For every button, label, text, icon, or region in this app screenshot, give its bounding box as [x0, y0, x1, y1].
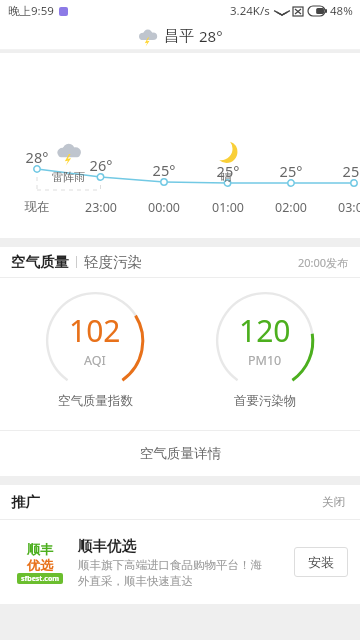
staticText: 00:00: [138, 199, 190, 216]
staticText: 25°: [208, 161, 248, 181]
staticText: 推广: [11, 493, 40, 511]
staticText: 23:00: [75, 199, 127, 216]
staticText: 顺丰优选: [78, 537, 136, 555]
other: 顺丰优选 logo: [12, 538, 68, 586]
staticText: 03:00: [328, 199, 360, 216]
staticText: 昌平: [164, 27, 194, 46]
staticText: 晴: [221, 170, 232, 184]
staticText: 空气质量: [11, 253, 69, 271]
staticText: 晚上9:59: [8, 3, 54, 19]
staticText: 25°: [271, 161, 311, 181]
staticText: 轻度污染: [84, 253, 142, 271]
button[interactable]: 关闭: [318, 491, 349, 513]
staticText: 25°: [334, 161, 360, 181]
staticText: 102: [69, 310, 121, 351]
staticText: 20:00发布: [298, 255, 349, 270]
staticText: 顺丰: [27, 541, 53, 557]
staticText: 26°: [81, 155, 121, 175]
staticText: 3.24K/s: [230, 3, 270, 19]
staticText: 优选: [27, 557, 53, 573]
staticText: 28°: [17, 147, 57, 167]
button[interactable]: 102: [20, 278, 170, 409]
staticText: 首要污染物: [234, 393, 297, 409]
staticText: 28°: [199, 26, 223, 46]
button[interactable]: 安装: [294, 547, 348, 577]
staticText: 01:00: [202, 199, 254, 216]
staticText: 02:00: [265, 199, 317, 216]
staticText: 120: [239, 310, 291, 351]
staticText: AQI: [84, 352, 106, 369]
staticText: 现在: [11, 199, 63, 215]
staticText: 48%: [330, 3, 353, 19]
button[interactable]: 120: [190, 278, 340, 409]
staticText: sfbest.com: [21, 574, 60, 584]
staticText: 25°: [144, 160, 184, 180]
staticText: 空气质量详情: [140, 445, 221, 462]
staticText: 空气质量指数: [58, 393, 133, 409]
staticText: PM10: [248, 352, 282, 369]
button[interactable]: 顺丰优选 logo: [12, 520, 348, 604]
staticText: 顺丰旗下高端进口食品购物平台！海: [78, 558, 262, 572]
button[interactable]: 空气质量详情: [0, 431, 360, 476]
staticText: 雷阵雨: [52, 170, 85, 184]
staticText: 外直采，顺丰快速直达: [78, 574, 193, 588]
staticText: 关闭: [322, 495, 345, 509]
staticText: 安装: [308, 554, 334, 570]
